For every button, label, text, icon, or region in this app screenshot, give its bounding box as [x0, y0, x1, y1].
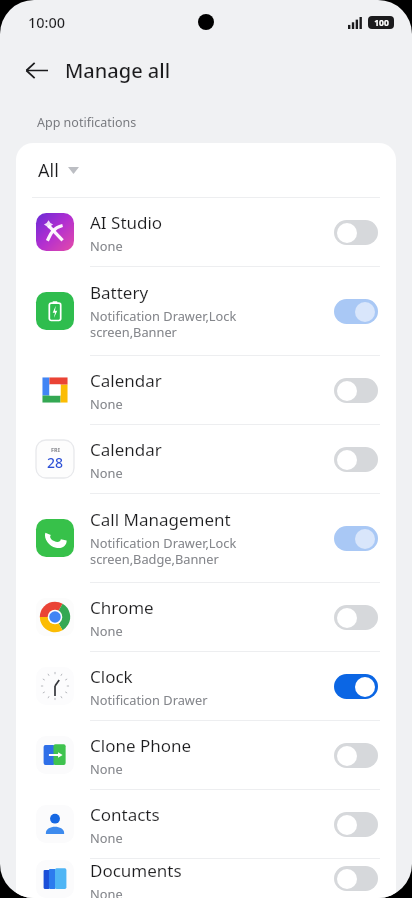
staticText: Chrome [90, 596, 154, 619]
button[interactable]: Chrome [16, 583, 396, 651]
staticText: None [90, 622, 123, 639]
button[interactable]: Toggle notifications [334, 605, 378, 630]
staticText: Calendar [90, 369, 162, 392]
button[interactable]: Toggle notifications [334, 743, 378, 768]
button[interactable]: Documents [16, 859, 396, 898]
staticText: Clock [90, 665, 133, 688]
staticText: Notification Drawer,Lock screen,Banner [90, 307, 237, 341]
button[interactable]: Toggle notifications [334, 526, 378, 551]
staticText: None [90, 829, 123, 846]
button[interactable]: All [16, 143, 396, 197]
staticText: Call Management [90, 508, 231, 531]
staticText: Contacts [90, 803, 160, 826]
staticText: 10:00 [28, 12, 66, 32]
staticText: AI Studio [90, 211, 163, 234]
button[interactable]: Contacts [16, 790, 396, 858]
staticText: None [90, 464, 123, 481]
button[interactable]: Toggle notifications [334, 674, 378, 699]
staticText: App notifications [37, 114, 137, 131]
staticText: None [90, 760, 123, 777]
button[interactable]: Toggle notifications [334, 447, 378, 472]
button[interactable]: Toggle notifications [334, 299, 378, 324]
staticText: None [90, 885, 123, 898]
staticText: Manage all [65, 57, 171, 84]
staticText: None [90, 395, 123, 412]
staticText: Notification Drawer,Lock screen,Badge,Ba… [90, 534, 237, 568]
staticText: FRI [51, 446, 60, 453]
staticText: Battery [90, 281, 149, 304]
button[interactable]: Clone Phone [16, 721, 396, 789]
button[interactable]: Toggle notifications [334, 866, 378, 891]
staticText: All [38, 158, 59, 183]
staticText: Documents [90, 859, 182, 882]
button[interactable]: Toggle notifications [334, 220, 378, 245]
button[interactable]: FRI [16, 425, 396, 493]
button[interactable]: Clock [16, 652, 396, 720]
button[interactable]: Toggle notifications [334, 378, 378, 403]
staticText: 28 [47, 453, 64, 472]
staticText: Clone Phone [90, 734, 192, 757]
button[interactable]: Battery [16, 267, 396, 355]
staticText: None [90, 237, 123, 254]
button[interactable]: AI Studio [16, 198, 396, 266]
staticText: 100 [374, 17, 389, 29]
staticText: Notification Drawer [90, 691, 208, 708]
button[interactable]: Toggle notifications [334, 812, 378, 837]
staticText: Calendar [90, 438, 162, 461]
button[interactable]: Calendar [16, 356, 396, 424]
button[interactable]: Back [14, 48, 58, 92]
button[interactable]: Call Management [16, 494, 396, 582]
